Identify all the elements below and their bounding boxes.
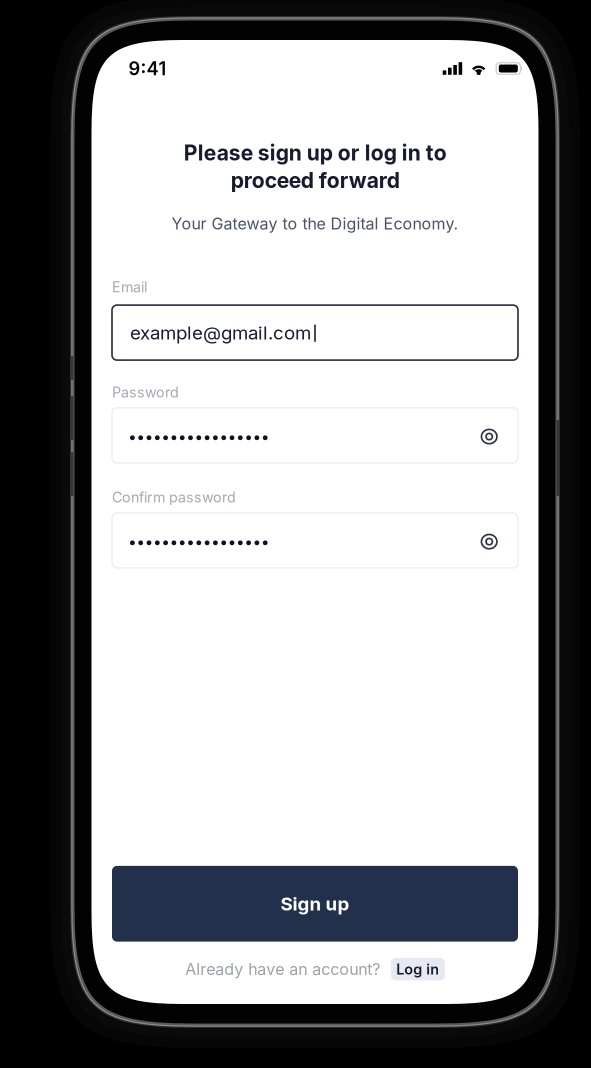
staticText: Email [112, 278, 147, 296]
staticText: Log in [396, 960, 439, 978]
button[interactable]: Show confirm password [470, 524, 500, 557]
button[interactable]: Sign up [112, 866, 518, 942]
staticText: Your Gateway to the Digital Economy. [171, 214, 458, 233]
staticText: Sign up [280, 892, 349, 915]
button[interactable]: Show password [470, 419, 500, 452]
button[interactable]: Log in [391, 958, 445, 980]
staticText: Confirm password [112, 489, 236, 506]
staticText: Password [112, 384, 179, 401]
staticText: Already have an account? [185, 959, 380, 979]
staticText: Please sign up or log in to proceed forw… [183, 140, 446, 193]
staticText: 9:41 [128, 57, 166, 79]
staticText: example@gmail.com [130, 321, 311, 344]
